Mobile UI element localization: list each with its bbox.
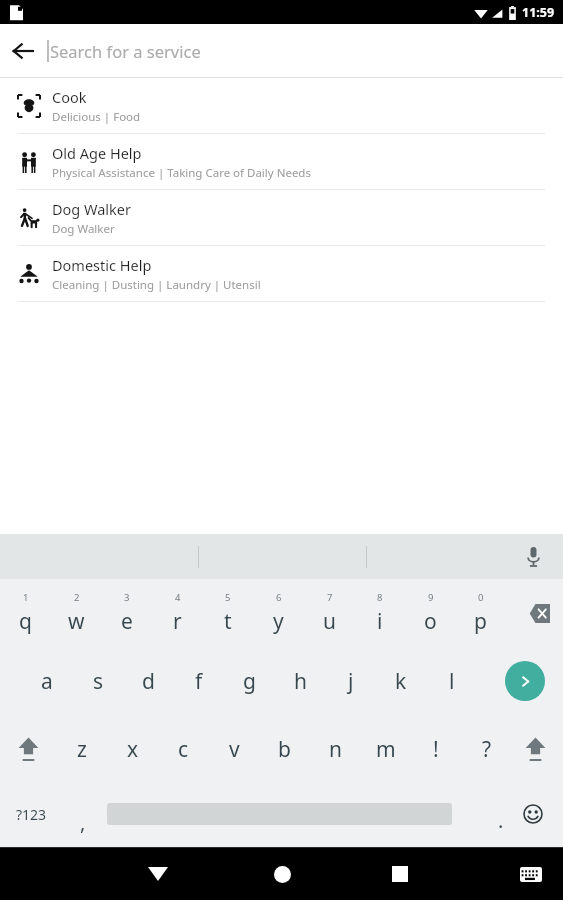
button[interactable]: c [159, 719, 207, 779]
staticText: ?123 [16, 805, 47, 824]
staticText: a [41, 667, 53, 696]
staticText: 0 [478, 591, 484, 604]
button[interactable]: Voice input [517, 541, 549, 573]
staticText: Delicious | Food [52, 109, 141, 125]
staticText: x [127, 735, 139, 764]
staticText: p [474, 607, 487, 636]
staticText: 8 [377, 591, 383, 604]
button[interactable]: 9 [405, 579, 456, 647]
button[interactable]: Shift [0, 715, 56, 783]
staticText: z [77, 735, 87, 764]
button[interactable]: b [260, 719, 308, 779]
button[interactable]: s [75, 651, 121, 711]
staticText: Cleaning | Dusting | Laundry | Utensil [52, 277, 261, 293]
button[interactable]: n [311, 719, 359, 779]
staticText: u [323, 607, 336, 636]
button[interactable]: Recent apps [376, 850, 424, 898]
staticText: Dog Walker [52, 199, 132, 219]
staticText: Old Age Help [52, 143, 142, 163]
button[interactable]: m [362, 719, 410, 779]
staticText: c [178, 735, 189, 764]
staticText: s [93, 667, 104, 696]
button[interactable]: Dog Walker [0, 190, 563, 246]
button[interactable]: Hide keyboard [134, 850, 182, 898]
button[interactable]: Cook [0, 78, 563, 134]
staticText: y [273, 607, 284, 636]
staticText: d [142, 667, 155, 696]
staticText: m [376, 735, 396, 764]
staticText: , [80, 809, 86, 836]
staticText: Domestic Help [52, 255, 152, 275]
staticText: h [294, 667, 307, 696]
button[interactable]: Switch keyboard [511, 854, 551, 894]
button[interactable]: g [226, 651, 272, 711]
button[interactable]: 7 [304, 579, 355, 647]
button[interactable]: k [378, 651, 424, 711]
staticText: w [68, 607, 85, 636]
staticText: n [329, 735, 342, 764]
button[interactable]: 2 [51, 579, 102, 647]
button[interactable]: Shift [507, 715, 563, 783]
button[interactable]: Search [505, 661, 545, 701]
button[interactable]: 3 [101, 579, 152, 647]
button[interactable]: v [210, 719, 258, 779]
button[interactable]: x [109, 719, 157, 779]
staticText: Dog Walker [52, 221, 115, 237]
button[interactable]: h [277, 651, 323, 711]
button[interactable]: Domestic Help [0, 246, 563, 302]
staticText: . [498, 807, 504, 834]
button[interactable]: l [429, 651, 475, 711]
staticText: l [449, 667, 455, 696]
button[interactable]: Emoji [513, 794, 553, 834]
staticText: 2 [74, 591, 80, 604]
staticText: i [377, 607, 383, 636]
button[interactable]: 4 [152, 579, 203, 647]
button[interactable]: 6 [253, 579, 304, 647]
staticText: 3 [124, 591, 130, 604]
staticText: r [173, 607, 182, 636]
staticText: 7 [327, 591, 333, 604]
staticText: Physical Assistance | Taking Care of Dai… [52, 165, 311, 181]
staticText: Cook [52, 87, 87, 107]
staticText: b [278, 735, 291, 764]
staticText: v [229, 735, 240, 764]
button[interactable]: 1 [0, 579, 51, 647]
staticText: f [195, 667, 203, 696]
button[interactable]: j [328, 651, 374, 711]
button[interactable]: 8 [354, 579, 405, 647]
button[interactable]: Backspace [511, 579, 563, 647]
staticText: 9 [428, 591, 434, 604]
staticText: 6 [276, 591, 282, 604]
staticText: 1 [23, 591, 29, 604]
staticText: g [243, 667, 256, 696]
button[interactable]: , [62, 787, 104, 841]
button[interactable]: ! [412, 719, 460, 779]
button[interactable]: f [176, 651, 222, 711]
staticText: k [395, 667, 407, 696]
staticText: 4 [175, 591, 181, 604]
staticText: t [224, 607, 232, 636]
button[interactable]: 0 [455, 579, 506, 647]
staticText: Search for a service [50, 40, 201, 62]
staticText: ! [433, 735, 439, 764]
staticText: o [424, 607, 437, 636]
staticText: j [348, 667, 354, 696]
staticText: e [121, 607, 133, 636]
button[interactable]: ? [463, 719, 511, 779]
staticText: 11:59 [522, 4, 555, 21]
button[interactable]: Home [258, 850, 306, 898]
button[interactable]: . [481, 787, 521, 841]
button[interactable]: Old Age Help [0, 134, 563, 190]
button[interactable]: a [24, 651, 70, 711]
staticText: 5 [225, 591, 231, 604]
staticText: q [19, 607, 32, 636]
button[interactable]: Back [0, 28, 46, 74]
button[interactable]: 5 [202, 579, 253, 647]
button[interactable]: d [125, 651, 171, 711]
staticText: ? [482, 735, 492, 764]
button[interactable]: z [58, 719, 106, 779]
button[interactable]: ?123 [4, 787, 58, 841]
